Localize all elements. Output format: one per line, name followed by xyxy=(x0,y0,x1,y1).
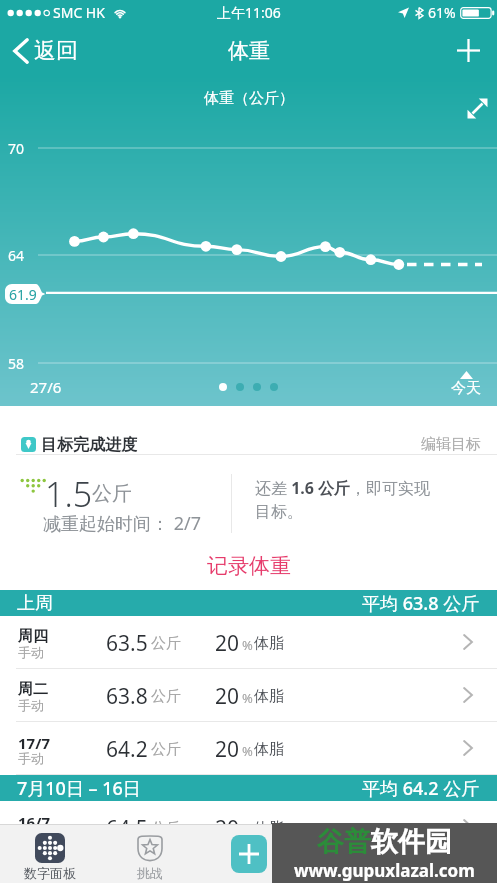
staticText: 20 xyxy=(215,629,240,658)
button[interactable]: Expand chart xyxy=(455,76,497,129)
staticText: 16/7 xyxy=(18,812,50,832)
staticText: % xyxy=(242,742,253,760)
staticText: 上周 xyxy=(17,592,53,615)
staticText: 手动 xyxy=(18,750,44,766)
staticText: 20 xyxy=(215,682,240,711)
staticText: 公斤 xyxy=(151,819,181,838)
staticText: 今天 xyxy=(451,379,481,398)
button[interactable]: 周四 xyxy=(0,616,497,668)
button[interactable]: 返回 xyxy=(0,28,92,74)
staticText: 70 xyxy=(8,139,25,158)
staticText: 公斤 xyxy=(151,740,181,759)
button[interactable]: 记录体重 xyxy=(0,544,497,587)
staticText: 软件园 xyxy=(371,825,452,859)
staticText: % xyxy=(242,821,253,839)
staticText: 7月10日 – 16日 xyxy=(17,776,141,801)
staticText: 平均 63.8 公斤 xyxy=(362,591,480,616)
staticText: 平均 64.2 公斤 xyxy=(362,776,480,801)
staticText: 编辑目标 xyxy=(421,435,481,452)
staticText: 体重 xyxy=(228,38,270,64)
button[interactable]: 数字面板 xyxy=(0,825,100,883)
staticText: 挑战 xyxy=(137,865,163,881)
staticText: 64 xyxy=(8,246,25,265)
staticText: 手动 xyxy=(18,644,44,660)
staticText: 体重（公斤） xyxy=(204,89,294,108)
staticText: 61% xyxy=(428,3,456,22)
staticText: 64.2 xyxy=(106,735,148,764)
staticText: 公斤 xyxy=(92,481,132,506)
staticText: 17/7 xyxy=(18,733,50,753)
staticText: 返回 xyxy=(34,37,78,65)
staticText: 20 xyxy=(215,814,240,843)
staticText: 上午11:06 xyxy=(217,3,281,22)
button[interactable]: 周二 xyxy=(0,669,497,721)
staticText: 公斤 xyxy=(151,634,181,653)
button[interactable]: 17/7 xyxy=(0,722,497,774)
staticText: 周四 xyxy=(18,627,48,646)
staticText: 27/6 xyxy=(30,377,62,397)
button[interactable]: 编辑目标 xyxy=(411,406,497,454)
button[interactable]: Add entry xyxy=(231,835,267,873)
staticText: 64.5 xyxy=(106,814,148,843)
staticText: 谷普 xyxy=(317,825,371,859)
staticText: 手动 xyxy=(18,829,44,845)
staticText: 公斤 xyxy=(151,687,181,706)
staticText: 减重起始时间： 2/7 xyxy=(43,511,201,536)
staticText: 体脂 xyxy=(254,819,284,838)
staticText: 体脂 xyxy=(254,740,284,759)
staticText: 周二 xyxy=(18,680,48,699)
staticText: 体脂 xyxy=(254,687,284,706)
button[interactable]: Add xyxy=(440,27,497,74)
staticText: 63.8 xyxy=(106,682,148,711)
staticText: 记录体重 xyxy=(207,553,291,579)
button[interactable]: 挑战 xyxy=(100,825,199,883)
button[interactable]: 16/7 xyxy=(0,801,497,853)
staticText: 手动 xyxy=(18,697,44,713)
staticText: SMC HK xyxy=(53,3,105,22)
staticText: 20 xyxy=(215,735,240,764)
staticText: 数字面板 xyxy=(24,865,76,881)
staticText: 58 xyxy=(8,354,25,373)
button[interactable]: 今天 xyxy=(451,371,481,398)
staticText: 目标完成进度 xyxy=(41,435,137,455)
staticText: 1.5 xyxy=(45,471,93,517)
staticText: % xyxy=(242,689,253,707)
staticText: www.gupuxlazal.com xyxy=(294,859,475,882)
staticText: 还差 1.6 公斤，即可实现目标。 xyxy=(255,477,435,522)
staticText: 体脂 xyxy=(254,634,284,653)
staticText: 61.9 xyxy=(9,285,37,304)
staticText: 63.5 xyxy=(106,629,148,658)
staticText: % xyxy=(242,636,253,654)
